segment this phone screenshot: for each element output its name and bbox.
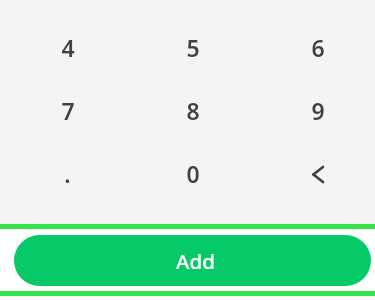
button[interactable]: 6 xyxy=(255,16,375,79)
staticText: 4 xyxy=(61,32,75,63)
button[interactable]: 7 xyxy=(5,79,130,142)
button[interactable]: Add xyxy=(14,235,371,286)
staticText: . xyxy=(64,158,71,189)
button[interactable]: 0 xyxy=(130,142,255,205)
button[interactable]: 5 xyxy=(130,16,255,79)
button[interactable]: . xyxy=(5,142,130,205)
staticText: 0 xyxy=(186,158,200,189)
staticText: 6 xyxy=(311,32,325,63)
button[interactable]: 9 xyxy=(255,79,375,142)
staticText: 5 xyxy=(186,32,200,63)
button[interactable]: Backspace xyxy=(255,142,375,205)
staticText: 7 xyxy=(61,95,75,126)
staticText: 9 xyxy=(311,95,325,126)
button[interactable]: 4 xyxy=(5,16,130,79)
button[interactable]: 8 xyxy=(130,79,255,142)
staticText: 8 xyxy=(186,95,200,126)
staticText: Add xyxy=(176,247,215,275)
